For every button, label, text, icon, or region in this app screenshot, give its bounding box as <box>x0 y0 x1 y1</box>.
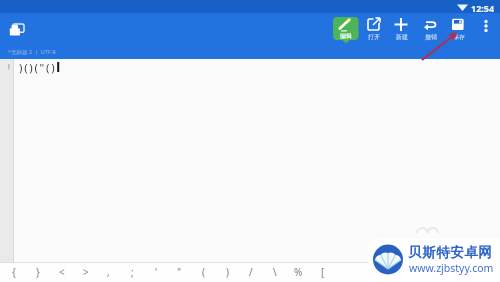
button[interactable]: " <box>168 262 191 282</box>
button[interactable]: )()("() <box>0 59 500 262</box>
button[interactable]: ( <box>192 262 215 282</box>
staticText: ) <box>226 265 229 279</box>
staticText: 保存 <box>453 33 465 41</box>
staticText: < <box>59 265 65 279</box>
staticText: ' <box>155 265 158 279</box>
staticText: 编辑 <box>340 32 352 40</box>
staticText: *无标题 2 | UTF-8 <box>8 48 56 56</box>
staticText: \ <box>273 265 277 279</box>
staticText: / <box>249 265 253 279</box>
button[interactable]: % <box>287 262 310 282</box>
staticText: 打开 <box>368 33 380 41</box>
button[interactable] <box>478 16 494 42</box>
staticText: } <box>36 265 40 279</box>
button[interactable]: ) <box>216 262 239 282</box>
button[interactable]: ' <box>145 262 168 282</box>
staticText: 撤销 <box>425 33 437 41</box>
staticText: ; <box>131 265 134 279</box>
button[interactable]: ; <box>121 262 144 282</box>
staticText: www.zjbstyy.com <box>409 261 494 275</box>
button[interactable]: 新建 <box>390 14 413 44</box>
staticText: , <box>107 265 110 279</box>
staticText: )()("() <box>19 60 57 76</box>
button[interactable]: 贝斯特安卓网 <box>368 239 500 282</box>
staticText: { <box>12 265 16 279</box>
staticText: 12:54 <box>471 2 495 14</box>
button[interactable]: 打开 <box>362 14 385 44</box>
staticText: 新建 <box>396 33 408 41</box>
button[interactable]: \ <box>263 262 286 282</box>
button[interactable]: 保存 <box>447 14 470 44</box>
button[interactable]: / <box>239 262 262 282</box>
button[interactable]: 编辑 <box>333 17 359 44</box>
button[interactable]: < <box>50 262 73 282</box>
button[interactable]: } <box>26 262 49 282</box>
button[interactable]: > <box>74 262 97 282</box>
staticText: " <box>177 265 182 279</box>
button[interactable] <box>6 19 28 39</box>
staticText: > <box>83 265 89 279</box>
staticText: [ <box>321 265 325 279</box>
button[interactable]: { <box>2 262 25 282</box>
staticText: % <box>294 265 303 279</box>
staticText: 贝斯特安卓网 <box>408 244 492 261</box>
staticText: ( <box>202 265 205 279</box>
button[interactable]: 撤销 <box>419 14 442 44</box>
button[interactable]: *无标题 2 | UTF-8 <box>0 45 500 59</box>
button[interactable]: , <box>97 262 120 282</box>
button[interactable]: [ <box>311 262 334 282</box>
